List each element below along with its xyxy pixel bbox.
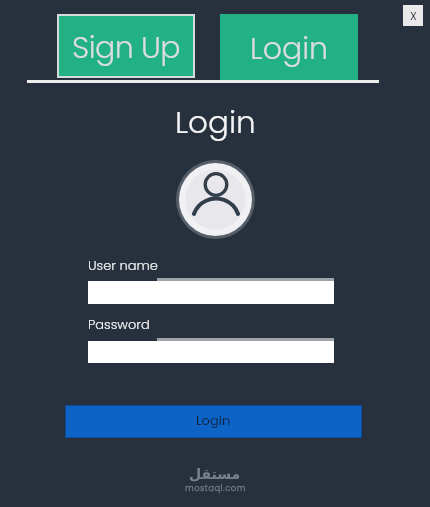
- staticText: Login: [175, 100, 256, 143]
- staticText: X: [410, 8, 417, 23]
- staticText: Login: [196, 411, 231, 429]
- button[interactable]: X: [403, 5, 423, 26]
- staticText: User name: [88, 256, 158, 274]
- button[interactable]: Login: [65, 405, 362, 438]
- staticText: Sign Up: [72, 27, 181, 69]
- staticText: mostaql.com: [185, 482, 246, 494]
- staticText: Password: [88, 315, 150, 333]
- staticText: Login: [250, 28, 328, 70]
- staticText: مستقل: [189, 466, 241, 482]
- button[interactable]: [88, 338, 334, 363]
- button[interactable]: Login: [220, 14, 358, 80]
- button[interactable]: [88, 278, 334, 304]
- button[interactable]: Sign Up: [57, 14, 195, 78]
